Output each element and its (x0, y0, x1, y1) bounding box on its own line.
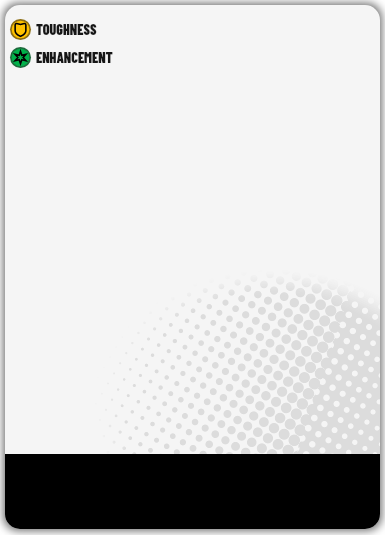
button[interactable]: ENHANCEMENT (10, 46, 113, 68)
button[interactable]: TOUGHNESS (10, 18, 97, 40)
staticText: TOUGHNESS (36, 21, 97, 38)
staticText: ENHANCEMENT (36, 49, 113, 66)
